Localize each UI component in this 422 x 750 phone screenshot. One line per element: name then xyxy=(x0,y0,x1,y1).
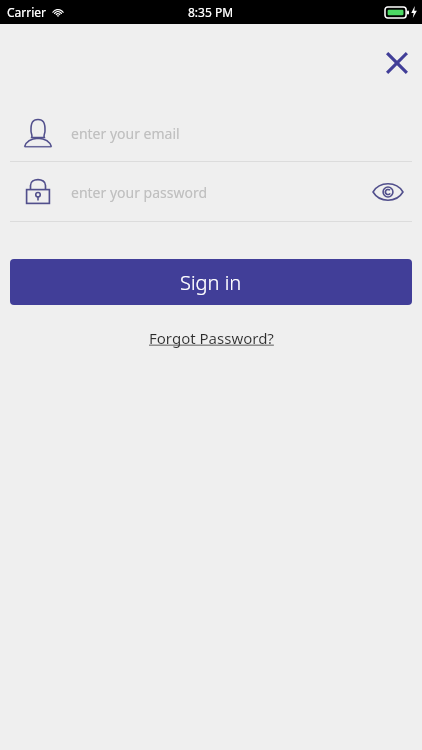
button[interactable]: enter your password xyxy=(0,176,422,208)
staticText: Carrier xyxy=(7,4,47,20)
staticText: Forgot Password? xyxy=(149,328,274,348)
staticText: enter your email xyxy=(71,124,180,143)
button[interactable]: Sign in xyxy=(10,259,412,305)
staticText: enter your password xyxy=(71,183,208,202)
button[interactable]: Close xyxy=(378,44,416,82)
staticText: 8:35 PM xyxy=(188,4,234,20)
staticText: Sign in xyxy=(180,269,242,296)
button[interactable]: enter your email xyxy=(0,104,422,161)
button[interactable]: Show password xyxy=(368,172,408,212)
button[interactable]: Forgot Password? xyxy=(141,324,282,352)
